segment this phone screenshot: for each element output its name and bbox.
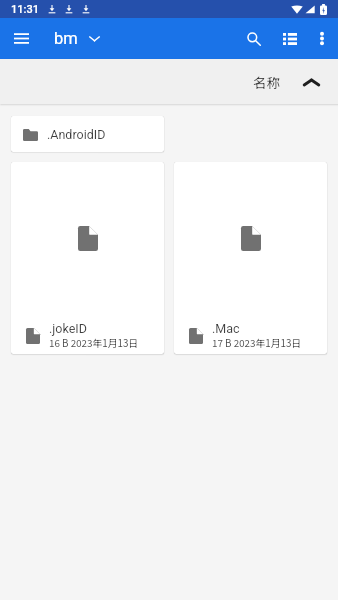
button[interactable]: Open navigation drawer [0,18,42,59]
staticText: bm [54,29,78,48]
button[interactable]: Switch view [273,18,306,59]
button[interactable]: More options [306,18,338,59]
staticText: 17 B 2023年1月13日 [212,336,302,350]
staticText: .AndroidID [47,127,106,142]
button[interactable]: 名称 [239,64,338,100]
staticText: 16 B 2023年1月13日 [49,336,139,350]
button[interactable]: .jokeID [11,162,164,354]
button[interactable]: bm [42,22,106,55]
staticText: .jokeID [49,321,87,336]
staticText: 名称 [253,72,280,92]
button[interactable]: Search [235,18,273,59]
staticText: 11:31 [11,3,39,16]
staticText: .Mac [212,321,240,336]
button[interactable]: .AndroidID [11,116,164,152]
button[interactable]: .Mac [174,162,327,354]
